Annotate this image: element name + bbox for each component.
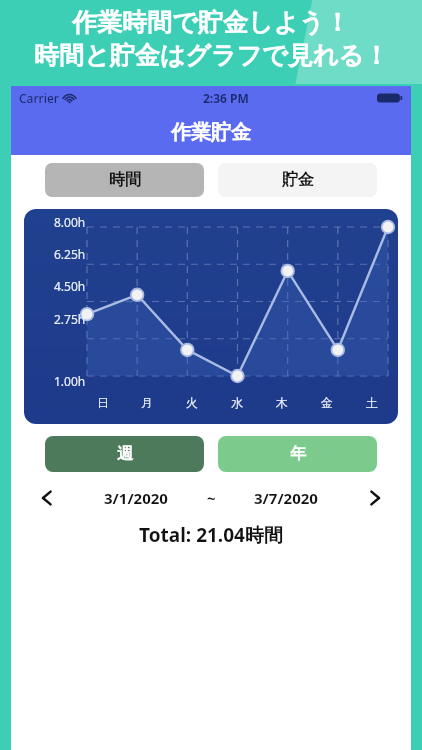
staticText: ~ [207,488,216,508]
button[interactable]: 週 [45,436,204,472]
staticText: 2.75h [54,311,86,327]
staticText: 3/7/2020 [254,488,318,508]
staticText: 金 [321,395,333,410]
staticText: 3/1/2020 [104,488,168,508]
button[interactable]: 年 [218,436,377,472]
button[interactable]: Previous period [29,480,65,516]
staticText: 年 [290,444,306,464]
staticText: 火 [186,395,198,410]
staticText: 4.50h [54,278,86,294]
staticText: Total: 21.04時間 [11,522,411,548]
staticText: 2:36 PM [203,90,249,106]
staticText: 木 [276,395,288,410]
button[interactable]: 時間 [45,163,204,197]
staticText: 作業時間で貯金しよう！ [72,7,350,38]
staticText: 土 [366,395,378,410]
button[interactable]: 貯金 [218,163,377,197]
staticText: 1.00h [54,373,86,389]
button[interactable]: Next period [357,480,393,516]
staticText: 日 [97,395,109,410]
staticText: 水 [231,395,243,410]
staticText: Carrier [19,90,59,106]
staticText: 月 [141,395,153,410]
staticText: 6.25h [54,246,86,262]
staticText: 時間と貯金はグラフで見れる！ [34,40,389,71]
staticText: 作業貯金 [171,120,251,145]
staticText: 時間 [109,170,141,190]
staticText: 8.00h [54,214,86,230]
staticText: 週 [117,444,133,464]
staticText: 貯金 [282,170,314,190]
